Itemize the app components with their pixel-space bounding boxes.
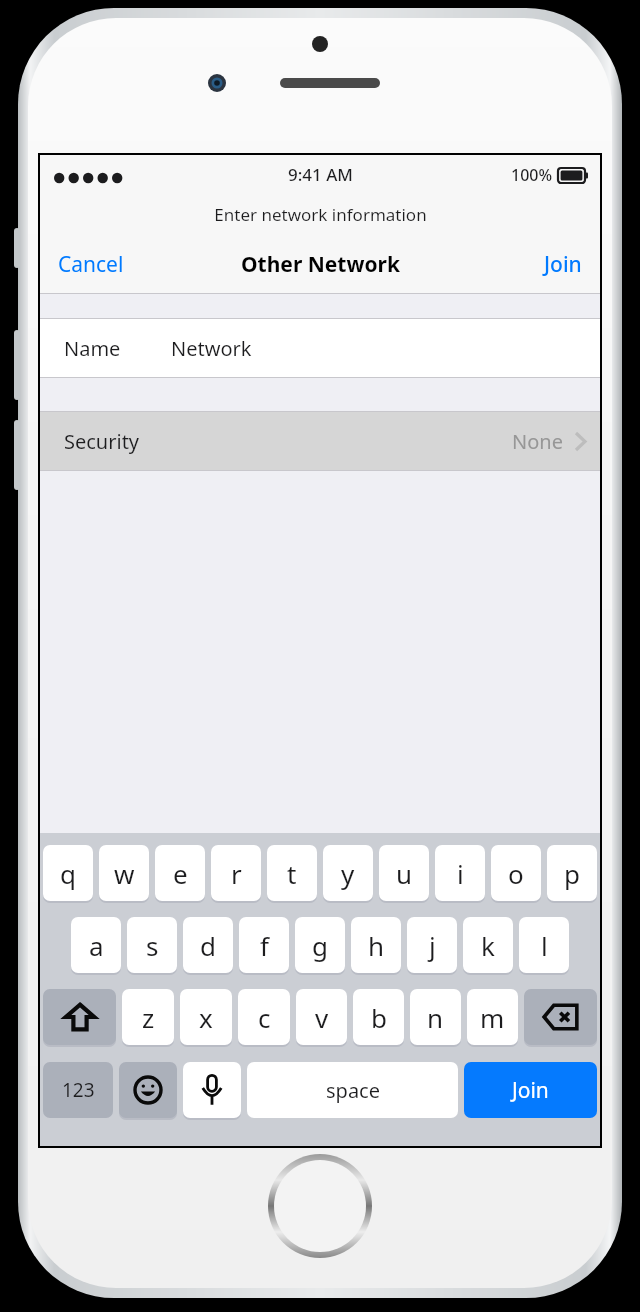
staticText: 123 (62, 1077, 95, 1103)
staticText: a (89, 928, 104, 963)
button[interactable]: m (467, 989, 518, 1045)
button[interactable]: f (239, 917, 289, 973)
button[interactable]: y (323, 845, 373, 901)
staticText: d (200, 928, 216, 963)
staticText: Name (64, 335, 121, 362)
button[interactable]: Emoji (119, 1062, 177, 1118)
staticText: Network (171, 335, 252, 362)
staticText: n (427, 1000, 444, 1035)
staticText: q (60, 856, 76, 891)
staticText: None (512, 428, 563, 455)
staticText: e (173, 856, 188, 891)
button[interactable]: t (267, 845, 317, 901)
staticText: u (396, 856, 413, 891)
staticText: p (564, 856, 580, 891)
staticText: z (142, 1000, 155, 1035)
button[interactable]: l (519, 917, 569, 973)
staticText: s (146, 928, 159, 963)
staticText: v (315, 1000, 329, 1035)
button[interactable]: 123 (43, 1062, 113, 1118)
button[interactable]: v (296, 989, 347, 1045)
button[interactable]: space (247, 1062, 458, 1118)
button[interactable]: w (99, 845, 149, 901)
staticText: h (368, 928, 385, 963)
staticText: o (508, 856, 524, 891)
staticText: Join (512, 1076, 549, 1105)
button[interactable]: i (435, 845, 485, 901)
button[interactable]: r (211, 845, 261, 901)
staticText: m (480, 1000, 505, 1035)
button[interactable]: e (155, 845, 205, 901)
button[interactable]: n (410, 989, 461, 1045)
staticText: i (457, 856, 464, 891)
staticText: Cancel (58, 250, 124, 279)
button[interactable]: Security (40, 412, 600, 470)
button[interactable]: k (463, 917, 513, 973)
button[interactable]: x (180, 989, 232, 1045)
staticText: c (258, 1000, 271, 1035)
button[interactable]: s (127, 917, 177, 973)
staticText: Other Network (241, 250, 400, 279)
staticText: x (199, 1000, 213, 1035)
button[interactable]: j (407, 917, 457, 973)
staticText: Security (64, 428, 140, 455)
staticText: Join (544, 250, 582, 279)
button[interactable]: Join (532, 242, 594, 287)
staticText: b (371, 1000, 387, 1035)
staticText: f (260, 928, 269, 963)
button[interactable]: Name (40, 319, 600, 377)
button[interactable]: b (353, 989, 404, 1045)
staticText: j (429, 928, 436, 963)
staticText: l (541, 928, 548, 963)
button[interactable]: p (547, 845, 597, 901)
staticText: y (341, 856, 355, 891)
staticText: 100% (511, 164, 553, 186)
button[interactable]: h (351, 917, 401, 973)
staticText: g (312, 928, 328, 963)
button[interactable]: c (238, 989, 290, 1045)
button[interactable]: g (295, 917, 345, 973)
button[interactable]: u (379, 845, 429, 901)
button[interactable]: Dictation (183, 1062, 241, 1118)
staticText: space (326, 1077, 380, 1104)
button[interactable]: Delete (524, 989, 597, 1045)
staticText: t (287, 856, 297, 891)
button[interactable]: Shift (43, 989, 116, 1045)
button[interactable]: z (122, 989, 174, 1045)
button[interactable]: a (71, 917, 121, 973)
staticText: Enter network information (214, 203, 427, 226)
button[interactable]: Join (464, 1062, 597, 1118)
staticText: r (231, 856, 242, 891)
button[interactable]: o (491, 845, 541, 901)
button[interactable]: q (43, 845, 93, 901)
staticText: w (114, 856, 135, 891)
button[interactable]: d (183, 917, 233, 973)
staticText: k (481, 928, 495, 963)
button[interactable]: Cancel (46, 242, 136, 287)
staticText: 9:41 AM (288, 163, 353, 186)
